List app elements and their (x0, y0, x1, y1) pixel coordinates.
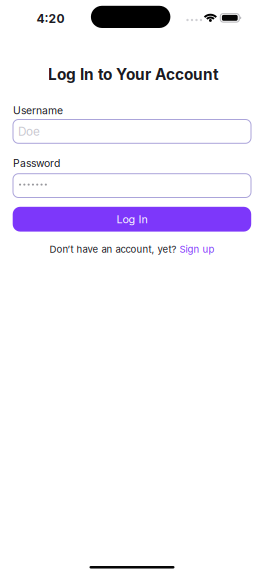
staticText: 4:20 (36, 11, 64, 26)
button[interactable]: Sign up (179, 243, 214, 255)
staticText: Log In (116, 213, 147, 226)
staticText: Password (13, 157, 60, 169)
staticText: Username (13, 104, 63, 117)
button[interactable]: Log In (13, 207, 251, 232)
staticText: Doe (18, 124, 40, 138)
staticText: Log In to Your Account (48, 65, 219, 84)
staticText: Sign up (179, 243, 214, 255)
staticText: Don’t have an account, yet? (49, 243, 176, 255)
